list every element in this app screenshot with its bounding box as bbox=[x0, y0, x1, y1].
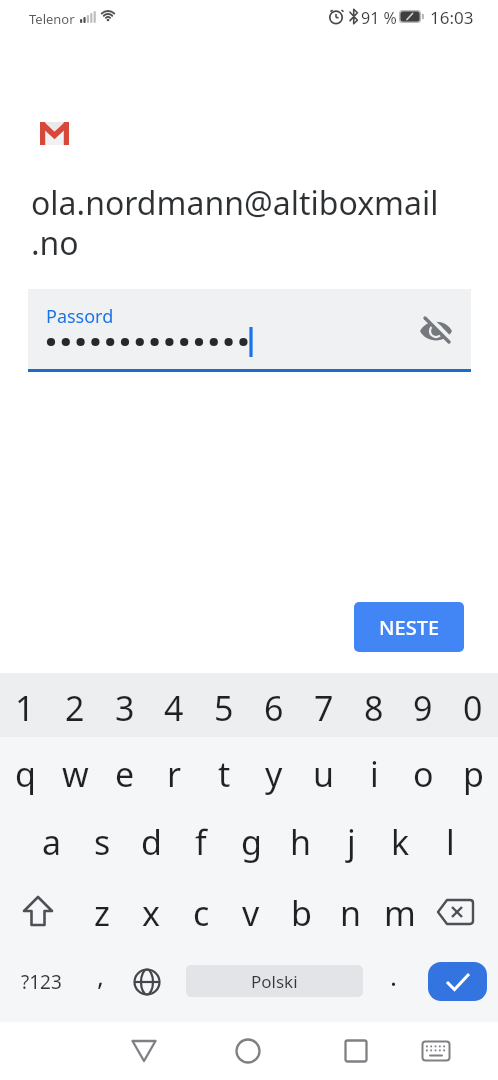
button[interactable]: e bbox=[101, 742, 149, 806]
staticText: 9 bbox=[413, 685, 433, 731]
button[interactable]: c bbox=[177, 881, 225, 945]
button[interactable]: 3 bbox=[101, 676, 149, 740]
button[interactable]: 5 bbox=[200, 676, 248, 740]
button[interactable]: 1 bbox=[1, 676, 49, 740]
staticText: j bbox=[347, 819, 356, 865]
button[interactable]: r bbox=[150, 742, 198, 806]
staticText: b bbox=[291, 890, 312, 936]
staticText: t bbox=[218, 751, 231, 797]
button[interactable]: y bbox=[250, 742, 298, 806]
button[interactable]: 0 bbox=[449, 676, 497, 740]
button[interactable]: 2 bbox=[51, 676, 99, 740]
button[interactable] bbox=[342, 1037, 370, 1065]
staticText: 2 bbox=[65, 685, 85, 731]
button[interactable]: k bbox=[376, 810, 424, 874]
button[interactable]: z bbox=[78, 881, 126, 945]
staticText: 8 bbox=[364, 685, 384, 731]
button[interactable]: v bbox=[227, 881, 275, 945]
staticText: i bbox=[370, 751, 379, 797]
staticText: v bbox=[242, 890, 260, 936]
button[interactable] bbox=[18, 893, 60, 933]
staticText: g bbox=[241, 819, 262, 865]
button[interactable]: j bbox=[327, 810, 375, 874]
staticText: e bbox=[115, 751, 135, 797]
staticText: c bbox=[193, 890, 210, 936]
staticText: l bbox=[446, 819, 455, 865]
staticText: Polski bbox=[251, 970, 298, 993]
staticText: d bbox=[141, 819, 162, 865]
button[interactable]: m bbox=[376, 881, 424, 945]
button[interactable]: 6 bbox=[250, 676, 298, 740]
staticText: w bbox=[62, 751, 89, 797]
button[interactable]: Polski bbox=[186, 965, 363, 997]
staticText: 3 bbox=[115, 685, 135, 731]
button[interactable]: 7 bbox=[300, 676, 348, 740]
button[interactable]: i bbox=[350, 742, 398, 806]
staticText: f bbox=[195, 819, 207, 865]
button[interactable]: Passord bbox=[28, 289, 471, 372]
button[interactable]: l bbox=[426, 810, 474, 874]
button[interactable] bbox=[428, 962, 487, 1001]
button[interactable]: s bbox=[78, 810, 126, 874]
staticText: ola.nordmann@altiboxmail bbox=[31, 181, 439, 225]
staticText: ?123 bbox=[21, 969, 62, 995]
staticText: u bbox=[313, 751, 335, 797]
button[interactable]: d bbox=[127, 810, 175, 874]
staticText: p bbox=[463, 751, 484, 797]
staticText: 7 bbox=[314, 685, 334, 731]
button[interactable]: a bbox=[28, 810, 76, 874]
staticText: 5 bbox=[214, 685, 234, 731]
button[interactable]: w bbox=[51, 742, 99, 806]
button[interactable]: . bbox=[369, 943, 417, 1007]
staticText: y bbox=[265, 751, 283, 797]
button[interactable]: ?123 bbox=[10, 962, 72, 1002]
staticText: z bbox=[94, 890, 110, 936]
staticText: 6 bbox=[264, 685, 284, 731]
staticText: Telenor bbox=[29, 10, 75, 28]
button[interactable]: p bbox=[449, 742, 497, 806]
button[interactable]: , bbox=[76, 943, 124, 1007]
staticText: . bbox=[390, 958, 397, 993]
staticText: k bbox=[391, 819, 410, 865]
staticText: r bbox=[167, 751, 182, 797]
staticText: m bbox=[384, 890, 416, 936]
button[interactable] bbox=[130, 1037, 158, 1065]
button[interactable] bbox=[234, 1037, 262, 1065]
button[interactable]: f bbox=[177, 810, 225, 874]
button[interactable] bbox=[421, 1039, 451, 1063]
staticText: Passord bbox=[46, 304, 114, 329]
button[interactable]: t bbox=[200, 742, 248, 806]
button[interactable]: b bbox=[277, 881, 325, 945]
button[interactable]: q bbox=[1, 742, 49, 806]
staticText: h bbox=[290, 819, 312, 865]
staticText: o bbox=[413, 751, 434, 797]
button[interactable]: NESTE bbox=[354, 602, 464, 652]
staticText: .no bbox=[31, 221, 79, 265]
button[interactable]: o bbox=[399, 742, 447, 806]
staticText: a bbox=[42, 819, 62, 865]
button[interactable]: g bbox=[227, 810, 275, 874]
button[interactable]: 9 bbox=[399, 676, 447, 740]
staticText: NESTE bbox=[379, 614, 440, 641]
button[interactable]: n bbox=[327, 881, 375, 945]
button[interactable]: u bbox=[300, 742, 348, 806]
staticText: 4 bbox=[164, 685, 184, 731]
staticText: x bbox=[142, 890, 160, 936]
button[interactable] bbox=[132, 967, 162, 997]
button[interactable]: 8 bbox=[350, 676, 398, 740]
button[interactable]: x bbox=[127, 881, 175, 945]
staticText: 1 bbox=[15, 685, 35, 731]
staticText: 0 bbox=[463, 685, 483, 731]
button[interactable]: h bbox=[277, 810, 325, 874]
staticText: s bbox=[94, 819, 111, 865]
staticText: n bbox=[340, 890, 362, 936]
staticText: 91 % bbox=[361, 7, 397, 29]
staticText: , bbox=[97, 958, 104, 993]
staticText: 16:03 bbox=[430, 6, 474, 29]
button[interactable]: 4 bbox=[150, 676, 198, 740]
button[interactable] bbox=[434, 896, 478, 932]
staticText: q bbox=[15, 751, 36, 797]
